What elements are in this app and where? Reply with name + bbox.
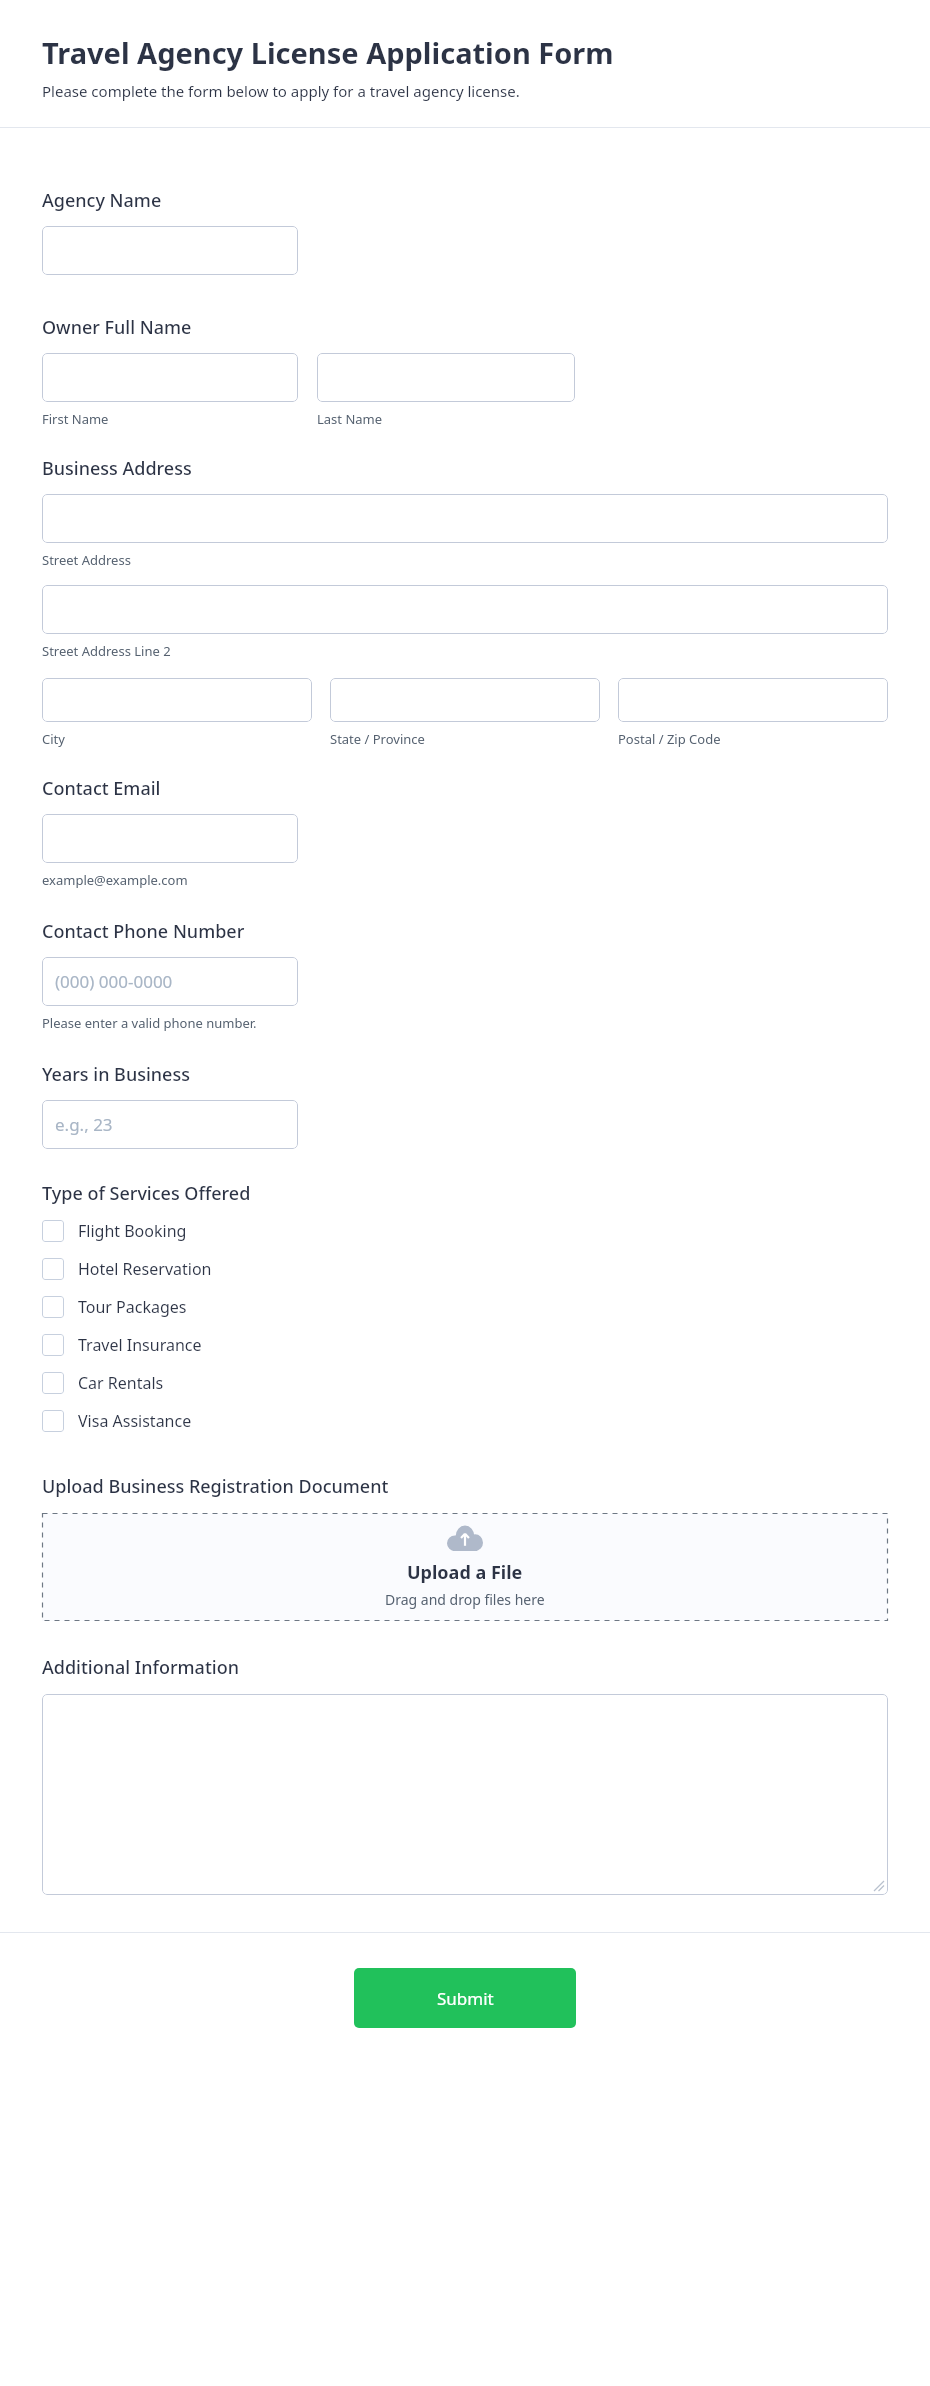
- staticText: Contact Email: [42, 776, 161, 801]
- button[interactable]: First Name input: [42, 353, 298, 402]
- button[interactable]: Agency Name input: [42, 226, 298, 275]
- staticText: Additional Information: [42, 1655, 239, 1680]
- staticText: Street Address: [42, 551, 131, 569]
- staticText: Owner Full Name: [42, 315, 192, 340]
- staticText: Submit: [437, 1987, 494, 2010]
- staticText: City: [42, 730, 65, 748]
- staticText: Postal / Zip Code: [618, 730, 721, 748]
- staticText: Travel Insurance: [78, 1334, 202, 1356]
- staticText: Car Rentals: [78, 1372, 164, 1394]
- staticText: (000) 000-0000: [55, 970, 173, 993]
- button[interactable]: City input: [42, 678, 312, 722]
- staticText: e.g., 23: [55, 1113, 113, 1136]
- staticText: example@example.com: [42, 871, 188, 889]
- staticText: Flight Booking: [78, 1220, 187, 1242]
- button[interactable]: Tour Packages: [42, 1288, 888, 1326]
- button[interactable]: Postal or Zip Code input: [618, 678, 888, 722]
- button[interactable]: Contact Phone Number input: [42, 957, 298, 1006]
- staticText: Last Name: [317, 410, 383, 428]
- button[interactable]: Hotel Reservation: [42, 1250, 888, 1288]
- button[interactable]: Flight Booking: [42, 1212, 888, 1250]
- staticText: Hotel Reservation: [78, 1258, 212, 1280]
- staticText: Please complete the form below to apply …: [42, 81, 520, 101]
- button[interactable]: Car Rentals: [42, 1364, 888, 1402]
- staticText: Drag and drop files here: [385, 1590, 545, 1609]
- staticText: Business Address: [42, 456, 192, 481]
- staticText: Agency Name: [42, 188, 162, 213]
- staticText: Visa Assistance: [78, 1410, 192, 1432]
- staticText: Upload Business Registration Document: [42, 1474, 389, 1499]
- button[interactable]: Upload a File: [42, 1513, 888, 1621]
- staticText: Type of Services Offered: [42, 1181, 251, 1206]
- button[interactable]: Last Name input: [317, 353, 575, 402]
- staticText: Upload a File: [407, 1560, 523, 1585]
- button[interactable]: Contact Email input: [42, 814, 298, 863]
- button[interactable]: Submit: [354, 1968, 576, 2028]
- staticText: Contact Phone Number: [42, 919, 245, 944]
- button[interactable]: Travel Insurance: [42, 1326, 888, 1364]
- staticText: Years in Business: [42, 1062, 190, 1087]
- staticText: Tour Packages: [78, 1296, 187, 1318]
- staticText: Travel Agency License Application Form: [42, 33, 614, 72]
- staticText: First Name: [42, 410, 109, 428]
- button[interactable]: Additional Information input: [42, 1694, 888, 1895]
- button[interactable]: Years in Business input: [42, 1100, 298, 1149]
- staticText: Street Address Line 2: [42, 642, 171, 660]
- button[interactable]: Street Address Line 2 input: [42, 585, 888, 634]
- button[interactable]: Street Address input: [42, 494, 888, 543]
- button[interactable]: State or Province input: [330, 678, 600, 722]
- button[interactable]: Visa Assistance: [42, 1402, 888, 1440]
- staticText: State / Province: [330, 730, 425, 748]
- staticText: Please enter a valid phone number.: [42, 1014, 257, 1032]
